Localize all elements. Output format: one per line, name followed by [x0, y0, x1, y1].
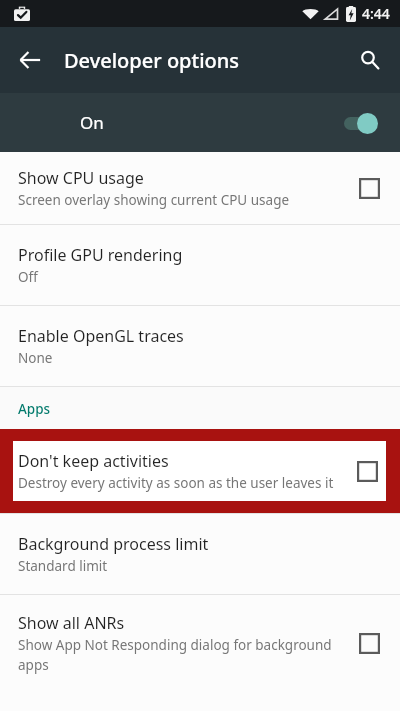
staticText: None [18, 349, 53, 367]
button[interactable]: Back [4, 34, 56, 86]
staticText: Profile GPU rendering [18, 244, 183, 266]
button[interactable]: Show CPU usage [0, 152, 400, 224]
button[interactable]: Enable OpenGL traces [0, 306, 400, 386]
staticText: Apps [18, 400, 51, 418]
staticText: Enable OpenGL traces [18, 325, 184, 347]
button[interactable]: Background process limit [0, 514, 400, 594]
button[interactable]: On [0, 93, 400, 152]
staticText: Don't keep activities [18, 450, 169, 472]
button[interactable]: Show all ANRs [0, 595, 400, 691]
button[interactable]: Search [344, 34, 396, 86]
staticText: Developer options [64, 47, 240, 74]
staticText: Destroy every activity as soon as the us… [18, 474, 334, 492]
staticText: On [80, 111, 104, 134]
staticText: Show App Not Responding dialog for backg… [18, 636, 342, 674]
staticText: Standard limit [18, 557, 108, 575]
button[interactable]: Don't keep activities [13, 441, 386, 501]
staticText: 4:44 [362, 4, 390, 23]
staticText: Show all ANRs [18, 612, 125, 634]
button[interactable]: Profile GPU rendering [0, 225, 400, 305]
staticText: Background process limit [18, 533, 209, 555]
staticText: Off [18, 268, 38, 286]
staticText: Screen overlay showing current CPU usage [18, 191, 290, 209]
staticText: Show CPU usage [18, 167, 144, 189]
